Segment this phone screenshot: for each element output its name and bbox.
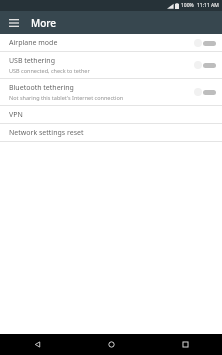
- staticText: Network settings reset: [9, 128, 84, 138]
- staticText: 11:11 AM: [197, 2, 219, 9]
- staticText: USB connected, check to tether: [9, 67, 90, 74]
- button[interactable]: Airplane mode: [0, 34, 222, 51]
- button[interactable]: Toggle: [194, 58, 216, 72]
- staticText: Bluetooth tethering: [9, 83, 74, 93]
- staticText: Airplane mode: [9, 38, 58, 48]
- button[interactable]: Open navigation menu: [5, 14, 23, 32]
- staticText: Not sharing this tablet's Internet conne…: [9, 94, 124, 101]
- button[interactable]: Toggle: [194, 36, 216, 50]
- button[interactable]: VPN: [0, 106, 222, 123]
- button[interactable]: Network settings reset: [0, 124, 222, 141]
- button[interactable]: Toggle: [194, 85, 216, 99]
- button[interactable]: USB tethering: [0, 52, 222, 78]
- staticText: USB tethering: [9, 56, 55, 66]
- staticText: 100%: [181, 2, 194, 9]
- button[interactable]: Recent apps: [148, 334, 222, 355]
- button[interactable]: Bluetooth tethering: [0, 79, 222, 105]
- staticText: VPN: [9, 110, 23, 120]
- button[interactable]: Home: [74, 334, 148, 355]
- staticText: More: [31, 16, 57, 30]
- button[interactable]: Back: [0, 334, 74, 355]
